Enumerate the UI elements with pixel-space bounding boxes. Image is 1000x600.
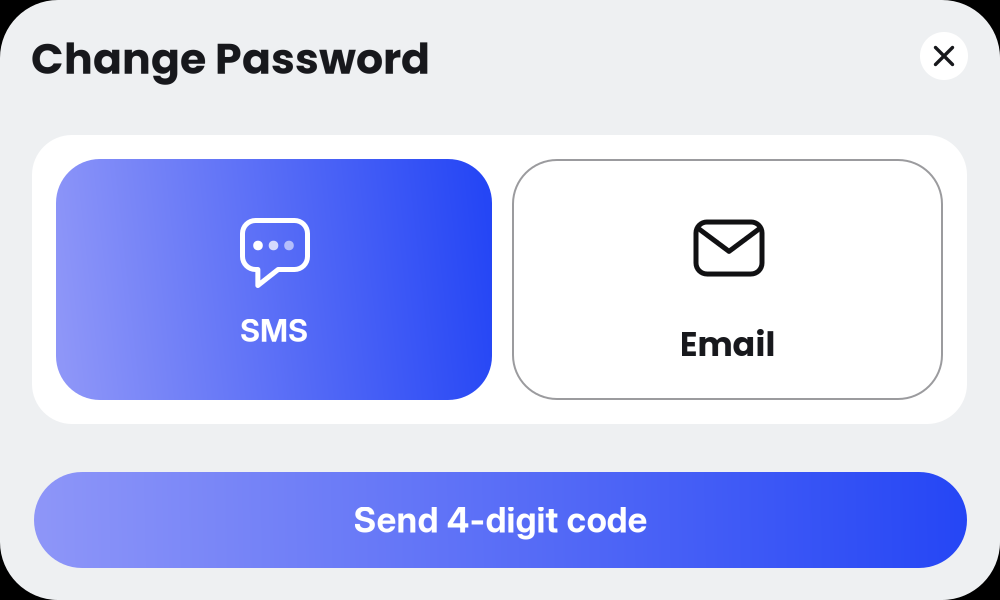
- button[interactable]: Send 4-digit code: [34, 472, 967, 568]
- staticText: Email: [679, 321, 775, 368]
- staticText: SMS: [240, 312, 308, 349]
- button[interactable]: SMS: [56, 159, 492, 400]
- staticText: Change Password: [31, 29, 430, 89]
- staticText: Send 4-digit code: [353, 499, 647, 541]
- button[interactable]: Close: [920, 32, 968, 80]
- button[interactable]: Email: [512, 159, 943, 400]
